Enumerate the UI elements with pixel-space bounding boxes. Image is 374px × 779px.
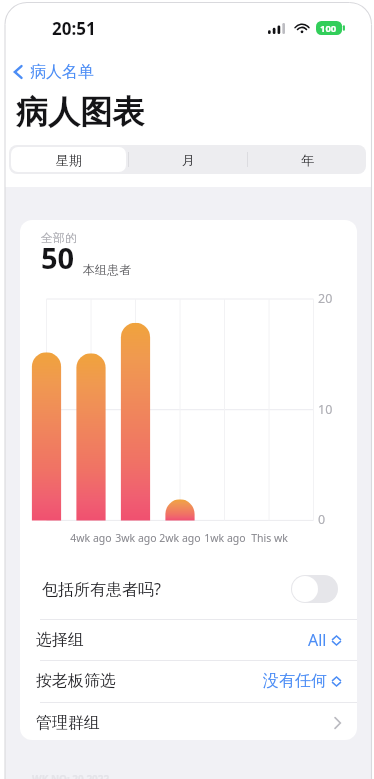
staticText: 10	[318, 401, 333, 418]
staticText: 2wk ago	[159, 531, 201, 545]
staticText: 100	[320, 22, 337, 35]
button[interactable]: 年	[250, 147, 364, 172]
staticText: 1wk ago	[204, 531, 246, 545]
button[interactable]: 月	[131, 147, 245, 172]
staticText: This wk	[251, 531, 288, 545]
staticText: 3wk ago	[115, 531, 157, 545]
button[interactable]: 管理群组	[20, 705, 357, 740]
staticText: 包括所有患者吗?	[42, 578, 161, 600]
staticText: 病人图表	[16, 92, 144, 132]
staticText: 0	[318, 511, 326, 528]
staticText: 本组患者	[83, 262, 131, 277]
button[interactable]: 选择组	[20, 620, 357, 660]
staticText: 月	[182, 152, 195, 168]
button[interactable]: 病人名单	[5, 60, 120, 84]
staticText: 管理群组	[36, 713, 100, 733]
staticText: All	[308, 629, 327, 651]
staticText: 20:51	[52, 17, 96, 40]
staticText: 全部的	[41, 230, 77, 245]
button[interactable]: 包括所有患者吗?	[20, 565, 357, 613]
staticText: 年	[301, 152, 314, 168]
button[interactable]: 星期	[11, 147, 126, 172]
staticText: 4wk ago	[70, 531, 112, 545]
button[interactable]: Include all patients	[291, 575, 338, 603]
staticText: 病人名单	[30, 62, 94, 82]
staticText: 星期	[56, 152, 82, 168]
staticText: 选择组	[36, 630, 84, 650]
staticText: 按老板筛选	[36, 671, 116, 691]
staticText: 没有任何	[263, 671, 327, 691]
staticText: 50	[41, 238, 75, 277]
button[interactable]: 按老板筛选	[20, 661, 357, 701]
staticText: WK NO: 20 2022	[32, 772, 110, 779]
staticText: 20	[318, 290, 333, 307]
